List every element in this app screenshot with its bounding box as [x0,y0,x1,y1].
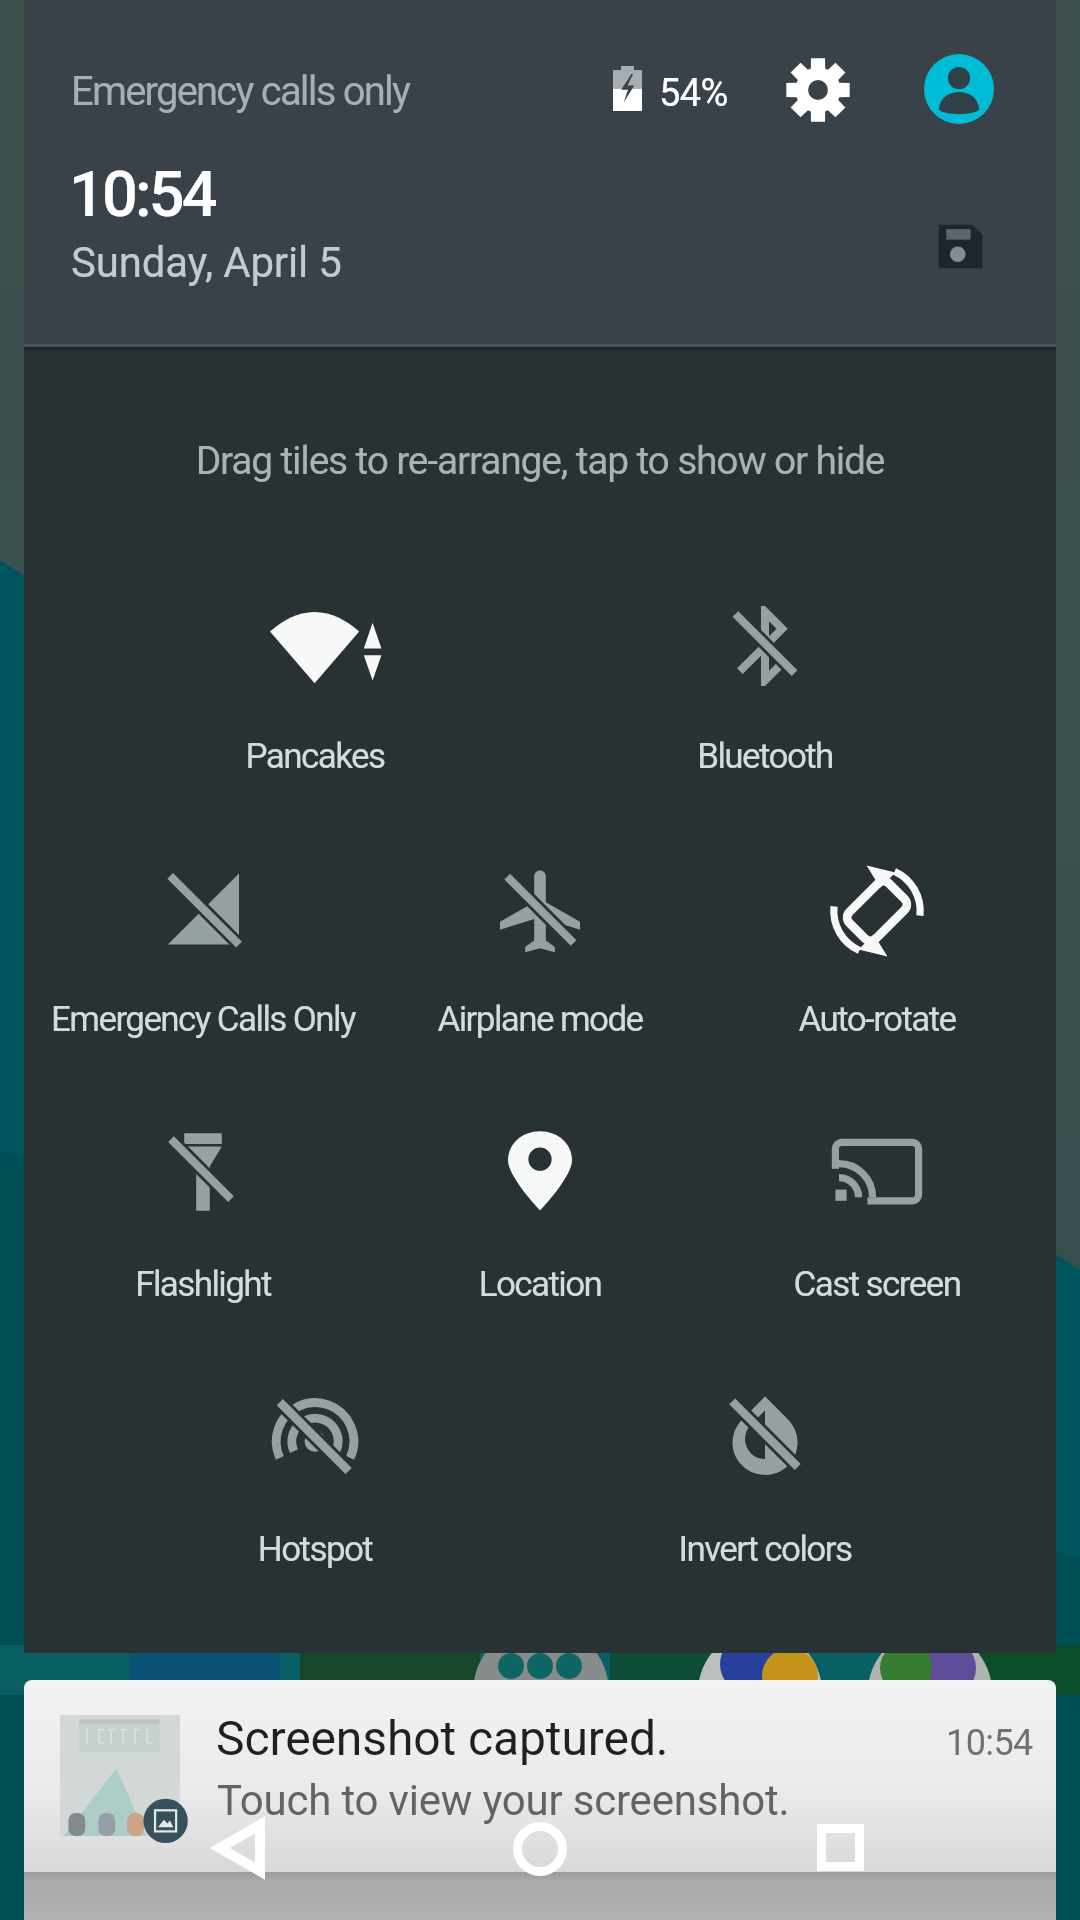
button[interactable]: Recent apps [770,1777,910,1917]
button[interactable]: Emergency Calls Only [33,855,373,1015]
staticText: Auto-rotate [707,999,1047,1040]
staticText: Bluetooth [595,736,935,777]
staticText: Drag tiles to re-arrange, tap to show or… [24,438,1056,484]
staticText: Flashlight [33,1264,373,1305]
button[interactable]: User profile [924,54,994,124]
staticText: 10:54 [69,158,215,232]
button[interactable]: Location [370,1116,710,1276]
staticText: 10:54 [946,1722,1033,1764]
staticText: Cast screen [707,1264,1047,1305]
staticText: Hotspot [145,1529,485,1570]
button[interactable]: Auto-rotate [707,855,1047,1015]
staticText: Sunday, April 5 [71,238,342,287]
button[interactable]: Cast screen [707,1116,1047,1276]
button[interactable]: Back [170,1778,310,1918]
button[interactable]: Airplane mode [370,855,710,1015]
button[interactable]: Save [917,203,1004,290]
staticText: 54% [659,71,728,116]
staticText: Touch to view your screenshot. [217,1776,790,1825]
staticText: Location [370,1264,710,1305]
button[interactable]: Invert colors [595,1379,935,1539]
button[interactable]: Hotspot [145,1379,485,1539]
staticText: Airplane mode [370,999,710,1040]
button[interactable]: Settings [782,54,854,126]
staticText: Emergency Calls Only [33,999,373,1040]
staticText: Emergency calls only [71,68,410,115]
button[interactable]: Screenshot captured. [24,1680,1056,1872]
button[interactable]: Flashlight [33,1116,373,1276]
staticText: Screenshot captured. [216,1710,669,1766]
button[interactable]: Bluetooth [595,590,935,750]
staticText: Invert colors [595,1529,935,1570]
staticText: Pancakes [145,736,485,777]
button[interactable]: Home [470,1779,610,1919]
button[interactable]: Pancakes [145,590,485,750]
